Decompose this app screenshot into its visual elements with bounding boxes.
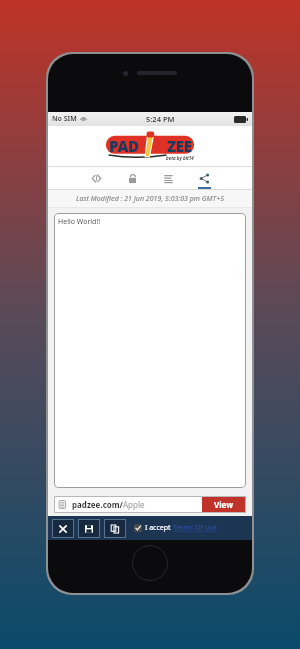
staticText: ZEE <box>167 136 192 156</box>
staticText: View <box>214 499 234 510</box>
staticText: I accept <box>145 523 173 533</box>
button[interactable]: Copy <box>104 519 126 538</box>
button[interactable]: Hello World!! <box>54 213 246 488</box>
button[interactable]: List <box>157 167 179 189</box>
button[interactable]: Lock <box>121 167 143 189</box>
staticText: PAD <box>109 136 139 156</box>
staticText: Last Modified : 21 Jun 2019, 5:03:03 pm … <box>76 194 225 204</box>
button[interactable]: Share <box>193 167 215 189</box>
button[interactable]: Home <box>132 545 168 581</box>
staticText: Terms Of Use <box>173 523 218 533</box>
button[interactable]: View <box>202 496 246 513</box>
button[interactable]: Code <box>85 167 107 189</box>
button[interactable]: I accept <box>134 516 218 540</box>
staticText: No SIM <box>52 114 77 124</box>
button[interactable]: Save <box>78 519 100 538</box>
button[interactable]: padzee.com/ <box>54 496 202 513</box>
staticText: Hello World!! <box>58 217 101 227</box>
staticText: padzee.com/ <box>72 499 123 510</box>
staticText: 5:24 PM <box>146 114 175 124</box>
button[interactable]: Close <box>52 519 74 538</box>
staticText: Apple <box>123 499 145 510</box>
staticText: beta by bit14 <box>166 155 194 161</box>
